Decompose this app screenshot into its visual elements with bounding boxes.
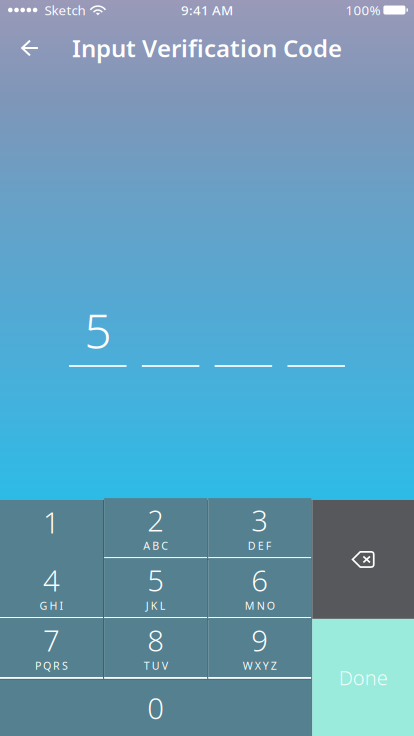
button[interactable]: Back	[8, 31, 52, 65]
staticText: J K L	[146, 599, 166, 613]
button[interactable]: Done	[312, 619, 414, 736]
button[interactable]: 0	[0, 680, 311, 736]
staticText: 0	[147, 688, 164, 727]
staticText: 3	[251, 501, 268, 540]
staticText: 1	[43, 502, 60, 541]
staticText: Input Verification Code	[72, 32, 342, 64]
staticText	[310, 298, 322, 362]
button[interactable]: 5	[104, 560, 207, 619]
staticText: 5	[147, 561, 164, 600]
button[interactable]: 3	[208, 500, 311, 559]
button[interactable]: Delete	[312, 500, 414, 619]
staticText: Sketch	[44, 1, 85, 19]
staticText: 9	[251, 621, 268, 660]
button[interactable]: 8	[104, 620, 207, 679]
staticText: 6	[251, 561, 268, 600]
staticText: T U V	[144, 658, 168, 673]
button[interactable]: 6	[208, 560, 311, 619]
button[interactable]: 7	[0, 620, 103, 679]
staticText	[237, 298, 249, 362]
staticText: G H I	[39, 599, 63, 613]
button[interactable]: 1	[0, 500, 103, 559]
staticText	[165, 298, 177, 362]
staticText: 8	[147, 621, 164, 660]
button[interactable]: 4	[0, 560, 103, 619]
staticText: 2	[147, 501, 164, 540]
staticText: M N O	[245, 599, 275, 613]
staticText: D E F	[248, 539, 272, 553]
staticText: 7	[43, 621, 60, 660]
staticText: A B C	[143, 539, 168, 553]
staticText: 100%	[345, 1, 380, 19]
staticText: 5	[84, 298, 111, 362]
staticText: 4	[43, 561, 60, 600]
staticText: P Q R S	[35, 658, 68, 673]
button[interactable]: 9	[208, 620, 311, 679]
staticText: 9:41 AM	[181, 1, 233, 19]
staticText: W X Y Z	[243, 658, 277, 673]
staticText: Done	[339, 664, 388, 691]
button[interactable]: 2	[104, 500, 207, 559]
